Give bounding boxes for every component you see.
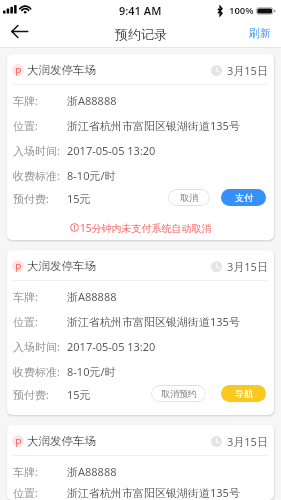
staticText: 3月15日 (227, 434, 268, 449)
staticText: 取消 (180, 192, 198, 203)
staticText: 大润发停车场 (27, 434, 96, 448)
staticText: 位置: (13, 314, 38, 329)
staticText: P (15, 64, 22, 76)
staticText: 车牌: (13, 464, 38, 479)
staticText: 15元 (67, 191, 91, 206)
staticText: P (15, 260, 22, 272)
staticText: 刷新 (249, 26, 271, 40)
staticText: 大润发停车场 (27, 63, 96, 77)
staticText: 位置: (13, 485, 38, 500)
staticText: 入场时间: (13, 339, 60, 354)
staticText: 支付 (235, 192, 253, 203)
button[interactable]: 取消 (168, 189, 210, 206)
staticText: 预约记录 (115, 26, 167, 42)
button[interactable]: 刷新 (249, 26, 271, 40)
staticText: 浙江省杭州市富阳区银湖街道135号 (67, 314, 240, 329)
staticText: 8-10元/时 (67, 364, 116, 379)
staticText: 9:41 AM (119, 3, 162, 18)
staticText: 入场时间: (13, 143, 60, 158)
button[interactable]: Back (0, 20, 32, 48)
staticText: 3月15日 (227, 259, 268, 274)
staticText: 100% (229, 4, 254, 17)
staticText: 收费标准: (13, 168, 60, 183)
staticText: 车牌: (13, 289, 38, 304)
staticText: 预付费: (13, 387, 49, 402)
staticText: 浙A88888 (67, 93, 117, 108)
button[interactable]: P (7, 425, 274, 500)
staticText: 8-10元/时 (67, 168, 116, 183)
staticText: 浙江省杭州市富阳区银湖街道135号 (67, 485, 240, 500)
button[interactable]: 导航 (221, 385, 266, 402)
staticText: 浙A88888 (67, 289, 117, 304)
staticText: 浙A88888 (67, 464, 117, 479)
staticText: 车牌: (13, 93, 38, 108)
button[interactable]: P (7, 54, 274, 240)
staticText: P (15, 435, 22, 447)
button[interactable]: P (7, 250, 274, 415)
staticText: 导航 (235, 388, 253, 399)
staticText: 预付费: (13, 191, 49, 206)
staticText: 15分钟内未支付系统自动取消 (80, 221, 212, 234)
staticText: 2017-05-05 13:20 (67, 143, 156, 158)
staticText: 收费标准: (13, 364, 60, 379)
staticText: 3月15日 (227, 63, 268, 78)
button[interactable]: 取消预约 (151, 385, 206, 402)
staticText: 取消预约 (161, 388, 197, 399)
staticText: 位置: (13, 118, 38, 133)
staticText: 大润发停车场 (27, 259, 96, 273)
staticText: 2017-05-05 13:20 (67, 339, 156, 354)
staticText: 15元 (67, 387, 91, 402)
staticText: 浙江省杭州市富阳区银湖街道135号 (67, 118, 240, 133)
button[interactable]: 支付 (221, 189, 266, 206)
